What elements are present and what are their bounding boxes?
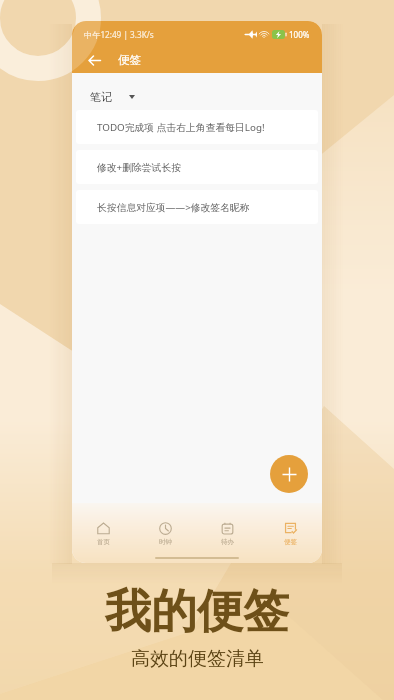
staticText: 待办 [221,538,234,546]
button[interactable]: 时钟 [134,522,196,546]
staticText: TODO完成项 点击右上角查看每日Log! [97,121,265,134]
staticText: 中午12:49 | 3.3K/s [84,29,154,40]
staticText: 便签 [118,53,141,67]
staticText: 便签 [284,538,297,546]
button[interactable]: 长按信息对应项——>修改签名昵称 [76,190,318,224]
staticText: 时钟 [159,538,172,546]
button[interactable]: 笔记 [90,90,135,104]
staticText: 修改+删除尝试长按 [97,161,181,174]
button[interactable]: Back [83,49,105,71]
button[interactable]: 修改+删除尝试长按 [76,150,318,184]
staticText: 笔记 [90,90,112,104]
staticText: 高效的便签清单 [131,647,264,671]
staticText: 长按信息对应项——>修改签名昵称 [97,201,250,214]
staticText: 100% [289,29,310,40]
staticText: 首页 [97,538,110,546]
button[interactable]: Add note [270,455,308,493]
button[interactable]: 便签 [259,522,322,546]
button[interactable]: TODO完成项 点击右上角查看每日Log! [76,110,318,144]
button[interactable]: 待办 [196,522,259,546]
button[interactable]: 首页 [72,522,134,546]
staticText: 我的便签 [105,583,289,641]
